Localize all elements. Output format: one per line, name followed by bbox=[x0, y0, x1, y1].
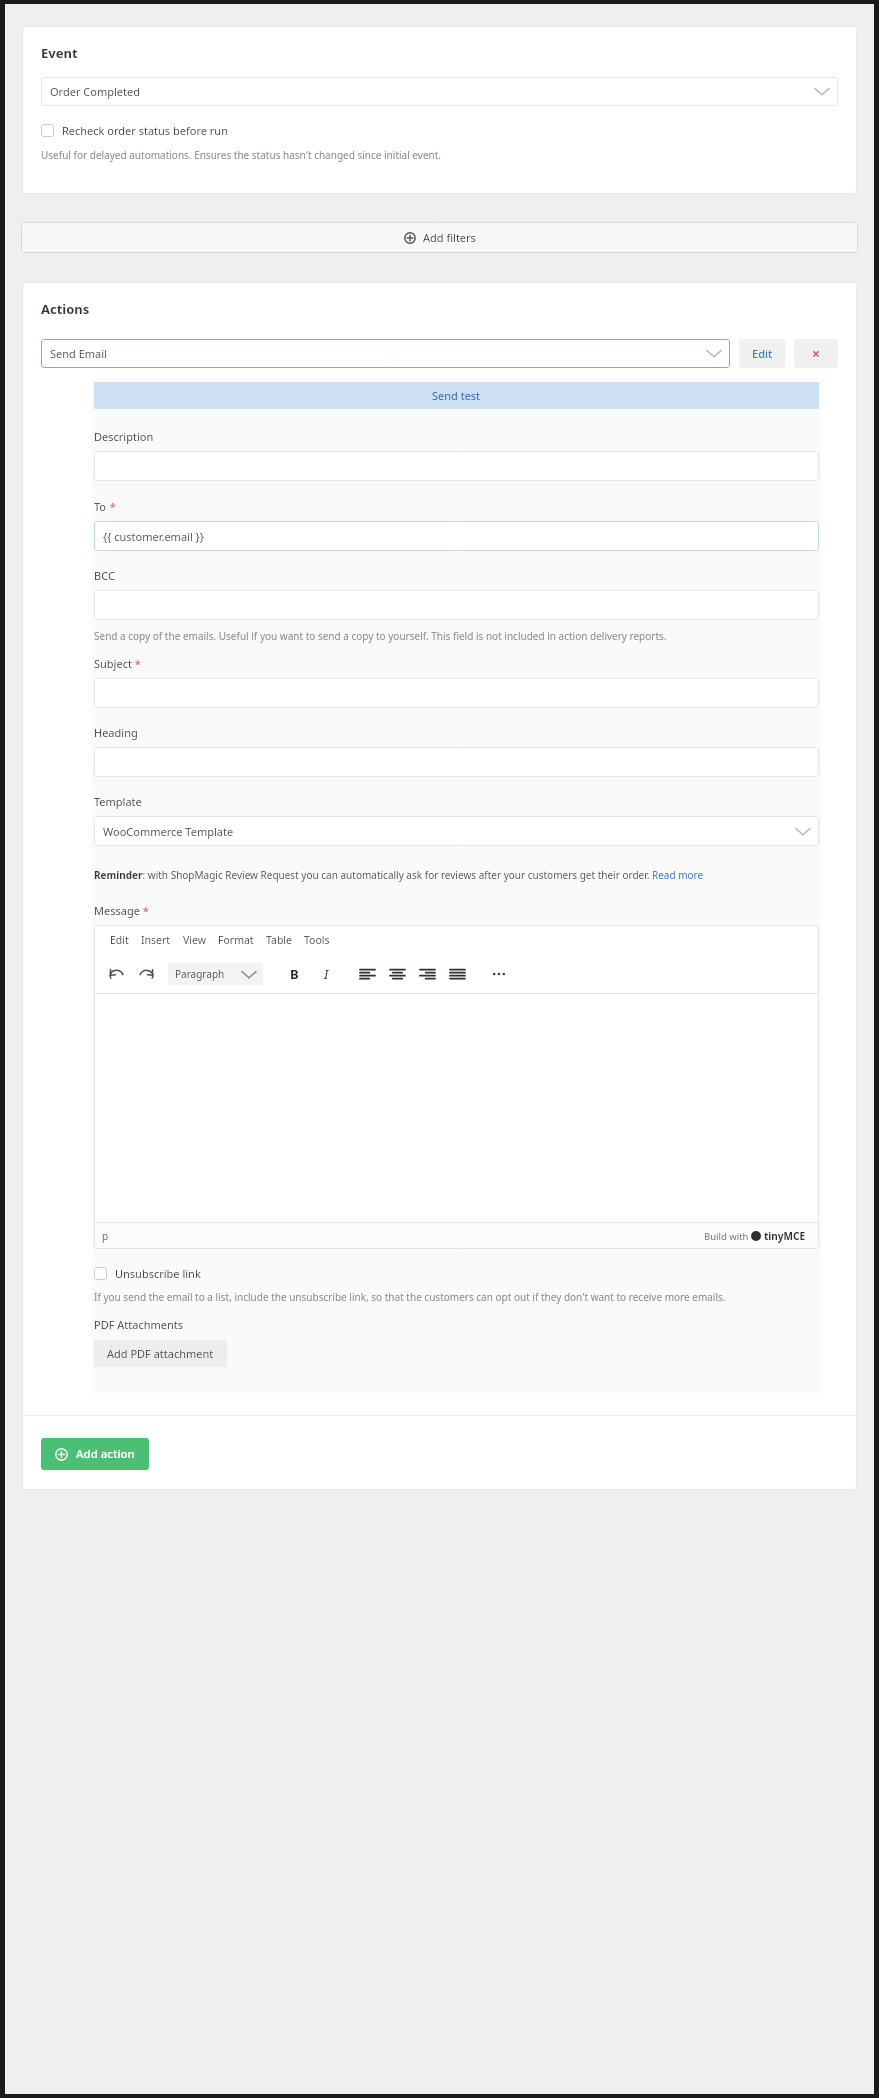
button[interactable] bbox=[94, 590, 819, 620]
button[interactable]: Table bbox=[260, 933, 298, 947]
staticText: Table bbox=[266, 933, 292, 947]
button[interactable]: More bbox=[487, 962, 511, 986]
staticText: BCC bbox=[94, 568, 115, 583]
staticText: WooCommerce Template bbox=[103, 824, 796, 839]
staticText: Reminder: with ShopMagic Review Request … bbox=[94, 868, 704, 882]
staticText: Paragraph bbox=[175, 967, 242, 981]
staticText: To bbox=[94, 499, 107, 514]
staticText: Add action bbox=[76, 1446, 135, 1462]
button[interactable]: Add PDF attachment bbox=[94, 1340, 227, 1367]
staticText: Build with bbox=[704, 1230, 751, 1243]
staticText: Edit bbox=[752, 346, 773, 361]
button[interactable]: Italic bbox=[315, 963, 337, 985]
staticText: Subject bbox=[94, 656, 132, 671]
staticText: * bbox=[140, 903, 149, 918]
button[interactable]: Redo bbox=[134, 962, 158, 986]
staticText: Unsubscribe link bbox=[115, 1266, 201, 1281]
button[interactable] bbox=[94, 678, 819, 708]
button[interactable] bbox=[94, 747, 819, 777]
button[interactable]: Send test bbox=[94, 382, 819, 409]
button[interactable]: WooCommerce Template bbox=[94, 816, 819, 846]
staticText: Event bbox=[41, 44, 78, 62]
staticText: Send a copy of the emails. Useful if you… bbox=[94, 629, 667, 643]
staticText: {{ customer.email }} bbox=[103, 529, 810, 544]
staticText: B bbox=[290, 965, 299, 983]
button[interactable]: View bbox=[177, 933, 212, 947]
staticText: Order Completed bbox=[50, 84, 815, 99]
staticText: Edit bbox=[110, 933, 129, 947]
staticText: Message bbox=[94, 903, 140, 918]
staticText: Send Email bbox=[50, 346, 707, 361]
button[interactable]: Undo bbox=[104, 962, 128, 986]
staticText: Description bbox=[94, 429, 154, 444]
staticText: Recheck order status before run bbox=[62, 123, 228, 138]
button[interactable]: Paragraph bbox=[168, 963, 263, 985]
staticText: If you send the email to a list, include… bbox=[94, 1290, 726, 1304]
button[interactable]: Order Completed bbox=[41, 77, 838, 106]
button[interactable]: Recheck order status before run bbox=[41, 123, 228, 138]
staticText: View bbox=[183, 933, 206, 947]
button[interactable]: Add filters bbox=[21, 222, 858, 253]
button[interactable]: {{ customer.email }} bbox=[94, 521, 819, 551]
button[interactable]: Justify bbox=[445, 962, 469, 986]
staticText: I bbox=[324, 965, 329, 983]
button[interactable]: Add action bbox=[41, 1438, 149, 1470]
staticText: * bbox=[132, 656, 141, 671]
staticText: Send test bbox=[432, 388, 481, 403]
staticText: tinyMCE bbox=[764, 1229, 805, 1243]
staticText: Heading bbox=[94, 725, 138, 740]
staticText: Format bbox=[218, 933, 254, 947]
staticText: Add filters bbox=[423, 230, 476, 245]
staticText: PDF Attachments bbox=[94, 1317, 184, 1332]
staticText: * bbox=[107, 499, 116, 514]
staticText: Tools bbox=[304, 933, 330, 947]
staticText: p bbox=[102, 1229, 704, 1243]
staticText: Insert bbox=[141, 933, 171, 947]
button[interactable]: Edit bbox=[104, 933, 135, 947]
button[interactable]: Bold bbox=[283, 963, 305, 985]
staticText: Useful for delayed automations. Ensures … bbox=[41, 148, 441, 162]
button[interactable]: Format bbox=[212, 933, 260, 947]
staticText: × bbox=[812, 344, 821, 363]
staticText: Add PDF attachment bbox=[107, 1346, 214, 1361]
button[interactable]: Edit bbox=[739, 339, 785, 368]
button[interactable]: Unsubscribe link bbox=[94, 1266, 201, 1281]
staticText: Template bbox=[94, 794, 142, 809]
button[interactable]: Insert bbox=[135, 933, 177, 947]
button[interactable]: Send Email bbox=[41, 339, 730, 368]
staticText: Actions bbox=[41, 300, 90, 318]
button[interactable]: Align left bbox=[355, 962, 379, 986]
button[interactable]: Remove action bbox=[794, 339, 838, 368]
button[interactable]: Align center bbox=[385, 962, 409, 986]
button[interactable] bbox=[94, 451, 819, 481]
button[interactable]: Align right bbox=[415, 962, 439, 986]
button[interactable]: Tools bbox=[298, 933, 336, 947]
